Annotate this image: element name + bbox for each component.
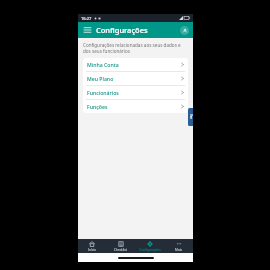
button[interactable]: Meu Plano — [83, 72, 188, 85]
button[interactable]: Funções — [83, 100, 188, 113]
staticText: Início — [88, 248, 96, 252]
button[interactable]: Funcionários — [83, 86, 188, 99]
staticText: Minha Conta — [87, 61, 119, 68]
staticText: Feedback — [188, 114, 192, 119]
staticText: Checklist — [114, 248, 127, 252]
button[interactable]: Account — [180, 26, 189, 35]
staticText: Configurações relacionadas aos seus dado… — [83, 42, 188, 54]
button[interactable]: Mais — [164, 239, 193, 253]
button[interactable]: Configurações — [135, 239, 164, 253]
button[interactable]: Checklist — [106, 239, 135, 253]
staticText: Funções — [87, 103, 108, 110]
staticText: Configurações — [139, 248, 161, 252]
staticText: Funcionários — [87, 89, 119, 96]
button[interactable]: Minha Conta — [83, 58, 188, 71]
staticText: Meu Plano — [87, 75, 114, 82]
button[interactable]: Feedback — [188, 108, 193, 126]
button[interactable]: Início — [78, 239, 106, 253]
button[interactable]: Open navigation menu — [82, 25, 92, 35]
staticText: Mais — [175, 248, 182, 252]
staticText: 16:27 — [81, 16, 92, 21]
staticText: Configurações — [96, 25, 148, 35]
